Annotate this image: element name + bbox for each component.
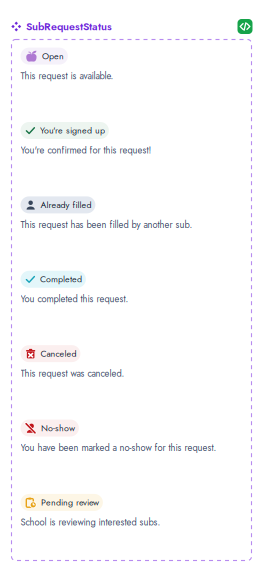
staticText: Pending review <box>41 496 99 509</box>
staticText: Open <box>42 50 64 62</box>
staticText: You completed this request. <box>20 292 128 306</box>
staticText: Completed <box>40 273 82 286</box>
staticText: You're signed up <box>40 124 105 137</box>
staticText: You're confirmed for this request! <box>20 144 151 157</box>
staticText: This request is available. <box>20 69 113 83</box>
staticText: No-show <box>41 422 75 434</box>
staticText: Already filled <box>40 198 91 211</box>
button[interactable]: View source code <box>237 19 252 34</box>
staticText: Canceled <box>40 347 76 360</box>
staticText: This request has been filled by another … <box>20 218 192 231</box>
staticText: This request was canceled. <box>20 367 124 380</box>
staticText: You have been marked a no-show for this … <box>20 441 216 455</box>
staticText: SubRequestStatus <box>26 19 112 34</box>
staticText: School is reviewing interested subs. <box>20 515 160 529</box>
